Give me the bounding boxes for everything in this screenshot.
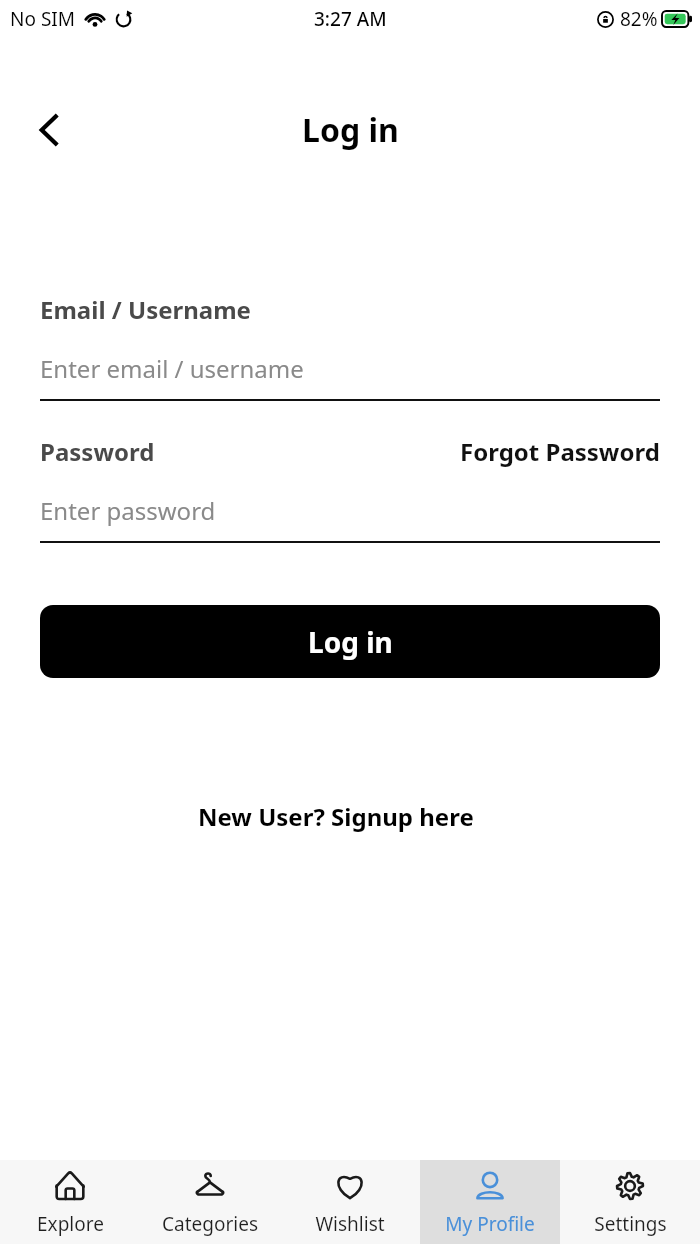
button[interactable]: Back <box>26 106 74 154</box>
staticText: Explore <box>37 1211 104 1237</box>
button[interactable]: Enter email / username <box>40 352 660 401</box>
staticText: Enter email / username <box>40 352 304 385</box>
staticText: Categories <box>162 1211 258 1237</box>
staticText: Email / Username <box>40 293 251 326</box>
staticText: 82% <box>620 6 658 32</box>
button[interactable]: Categories <box>140 1160 280 1244</box>
button[interactable]: Explore <box>0 1160 140 1244</box>
button[interactable]: Log in <box>40 605 660 678</box>
staticText: My Profile <box>445 1211 535 1237</box>
staticText: Settings <box>594 1211 667 1237</box>
staticText: Forgot Password <box>460 435 660 468</box>
staticText: Log in <box>308 623 393 661</box>
button[interactable]: Enter password <box>40 494 660 543</box>
button[interactable]: New User? Signup here <box>198 800 474 833</box>
staticText: New User? Signup here <box>198 800 474 833</box>
staticText: No SIM <box>10 6 75 32</box>
button[interactable]: Forgot Password <box>460 435 660 468</box>
staticText: Password <box>40 435 155 468</box>
staticText: 3:27 AM <box>314 6 387 32</box>
button[interactable]: Wishlist <box>280 1160 420 1244</box>
button[interactable]: My Profile <box>420 1160 560 1244</box>
staticText: Log in <box>302 108 399 152</box>
button[interactable]: Settings <box>560 1160 700 1244</box>
staticText: Wishlist <box>315 1211 385 1237</box>
staticText: Enter password <box>40 494 216 527</box>
